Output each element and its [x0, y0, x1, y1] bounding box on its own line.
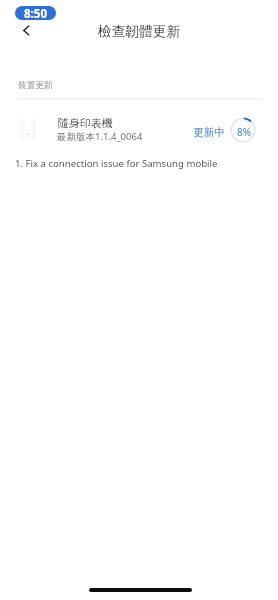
staticText: 最新版本1.1.4_0064: [57, 130, 143, 143]
staticText: 裝置更新: [18, 80, 53, 91]
staticText: 隨身印表機: [58, 117, 113, 131]
staticText: 檢查韌體更新: [0, 23, 278, 40]
staticText: 8%: [237, 125, 252, 139]
button[interactable]: Back: [12, 16, 41, 45]
staticText: 更新中: [193, 126, 226, 140]
button[interactable]: 隨身印表機: [0, 105, 278, 153]
staticText: 1. Fix a connection issue for Samsung mo…: [15, 157, 218, 170]
staticText: 8:50: [24, 6, 47, 20]
other: Update progress 8 percent: [230, 117, 256, 143]
